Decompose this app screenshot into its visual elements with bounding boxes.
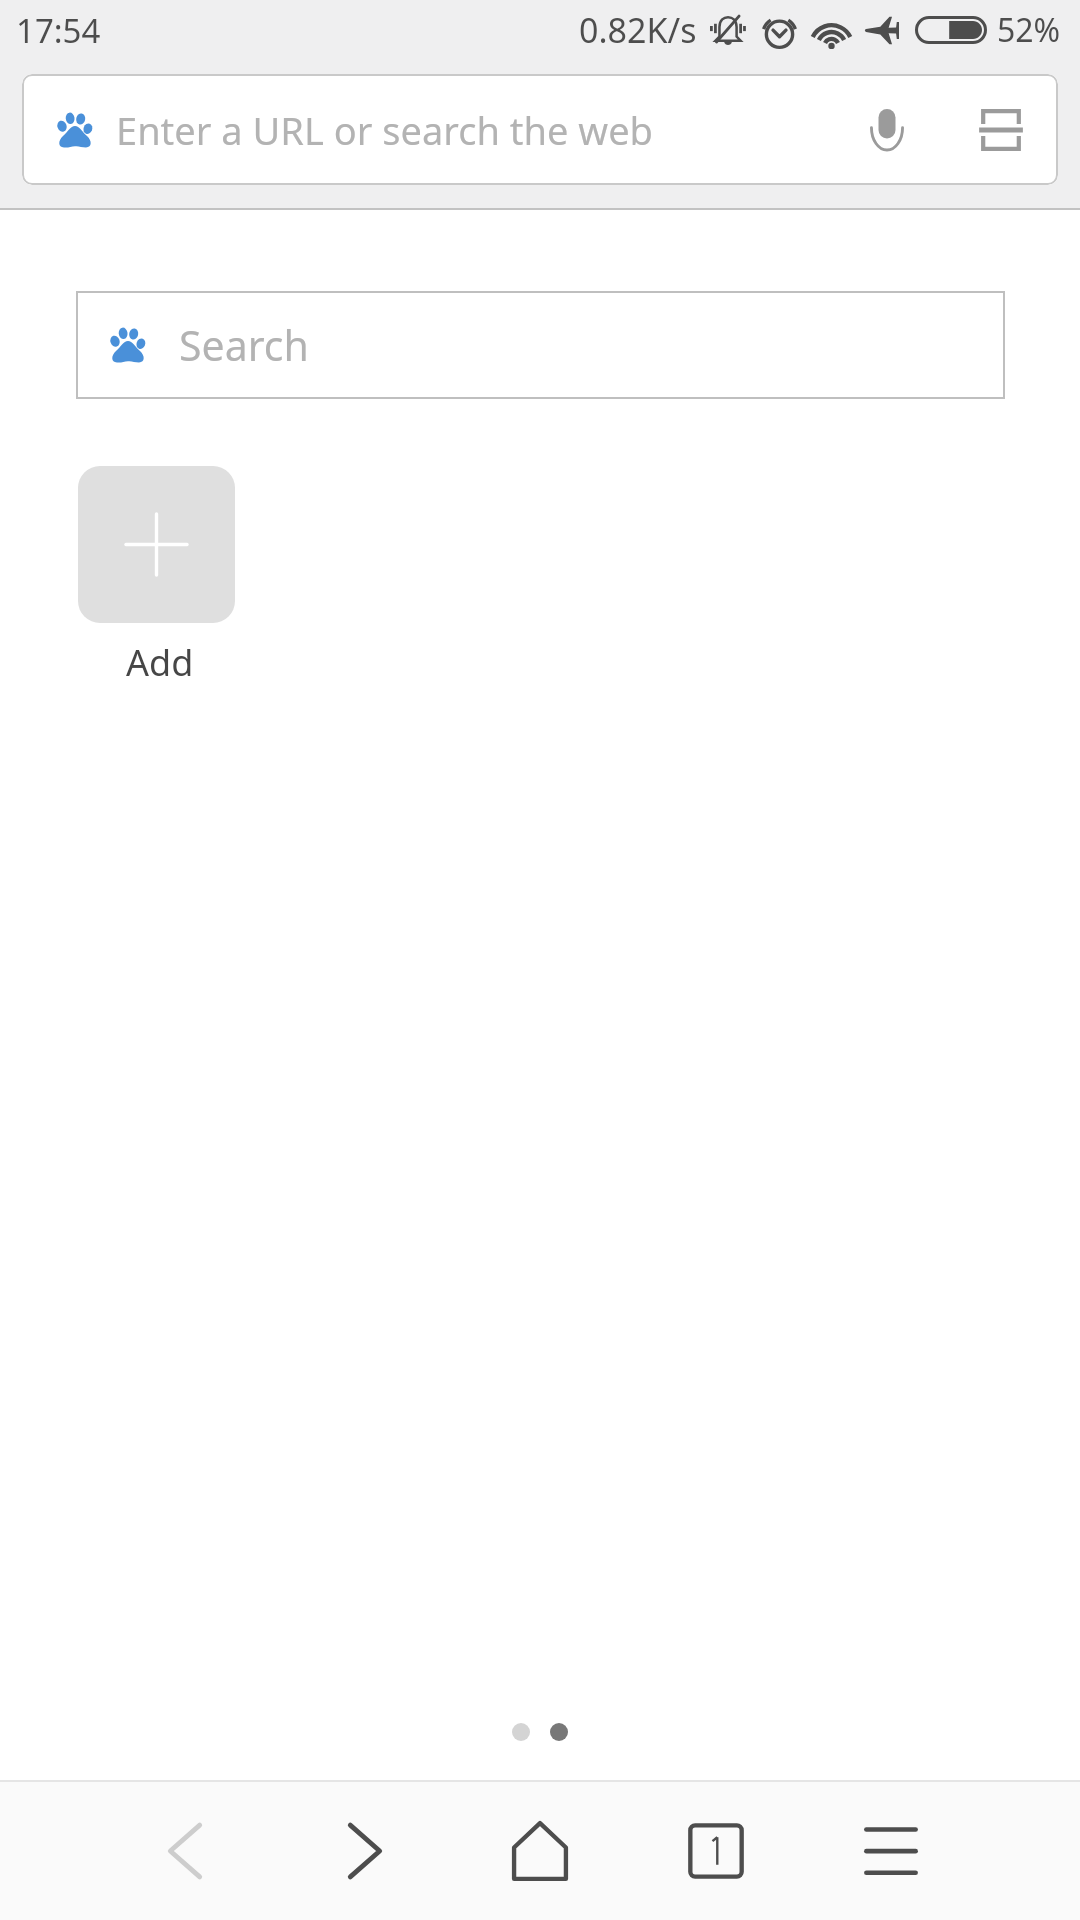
staticText: Search — [179, 317, 309, 373]
staticText: 52% — [997, 8, 1061, 52]
button[interactable]: Menu — [837, 1782, 945, 1920]
staticText: 17:54 — [16, 8, 101, 53]
button[interactable]: Enter a URL or search the web — [22, 74, 1058, 185]
button[interactable]: Add — [78, 466, 235, 687]
button[interactable]: Scan QR code — [958, 75, 1044, 184]
button[interactable]: Search — [76, 291, 1005, 399]
staticText: 0.82K/s — [579, 7, 697, 53]
button[interactable]: Back — [131, 1782, 239, 1920]
staticText: Add — [126, 638, 194, 687]
button[interactable]: Forward — [311, 1782, 419, 1920]
button[interactable]: Voice search — [844, 75, 930, 184]
staticText: Enter a URL or search the web — [116, 104, 653, 156]
button[interactable]: Home — [486, 1782, 594, 1920]
button[interactable]: Tabs — [662, 1782, 770, 1920]
